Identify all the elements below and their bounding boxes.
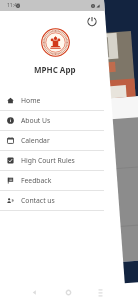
button[interactable]: High Court Rules xyxy=(0,151,138,171)
button[interactable]: Logout xyxy=(86,15,98,27)
staticText: 11:49 xyxy=(7,2,20,9)
staticText: About Us xyxy=(21,116,51,125)
button[interactable]: Home xyxy=(63,287,74,298)
staticText: Calendar xyxy=(21,136,50,145)
button[interactable]: Feedback xyxy=(0,171,138,191)
button[interactable]: Home xyxy=(0,91,138,111)
button[interactable]: About Us xyxy=(0,111,138,131)
staticText: Feedback xyxy=(21,176,52,185)
button[interactable]: Recent apps xyxy=(95,287,106,298)
staticText: Contact us xyxy=(21,196,55,205)
button[interactable]: Calendar xyxy=(0,131,138,151)
staticText: Home xyxy=(21,96,41,105)
button[interactable]: Back xyxy=(29,287,40,298)
button[interactable]: Contact us xyxy=(0,191,138,211)
staticText: High Court Rules xyxy=(21,156,75,165)
staticText: MPHC App xyxy=(34,64,76,75)
